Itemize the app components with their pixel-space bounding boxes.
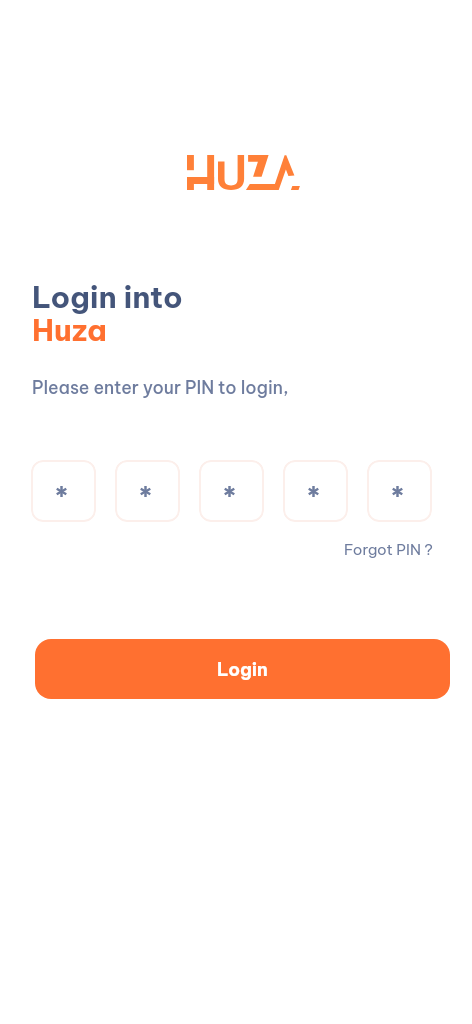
button[interactable]: PIN digit	[367, 460, 432, 522]
other: Huza logo	[187, 155, 300, 190]
button[interactable]: Forgot PIN ?	[342, 538, 435, 561]
staticText: Login into	[32, 278, 183, 316]
staticText: Huza	[32, 311, 107, 349]
button[interactable]: PIN digit	[31, 460, 96, 522]
button[interactable]: Login	[35, 639, 450, 699]
staticText: Login	[217, 658, 268, 681]
button[interactable]: PIN digit	[283, 460, 348, 522]
button[interactable]: PIN digit	[199, 460, 264, 522]
staticText: Please enter your PIN to login,	[32, 376, 289, 398]
button[interactable]: PIN digit	[115, 460, 180, 522]
staticText: Forgot PIN ?	[344, 540, 433, 559]
